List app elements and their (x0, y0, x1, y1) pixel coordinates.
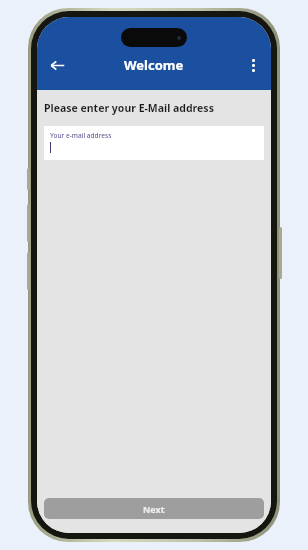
staticText: Please enter your E-Mail address (44, 101, 214, 115)
staticText: Next (143, 503, 165, 515)
button[interactable]: Back (43, 51, 71, 79)
button[interactable]: Your e-mail address (44, 126, 264, 160)
button[interactable]: More options (240, 52, 266, 78)
button[interactable]: Next (44, 498, 264, 519)
staticText: Your e-mail address (50, 131, 112, 140)
staticText: Welcome (124, 56, 184, 74)
